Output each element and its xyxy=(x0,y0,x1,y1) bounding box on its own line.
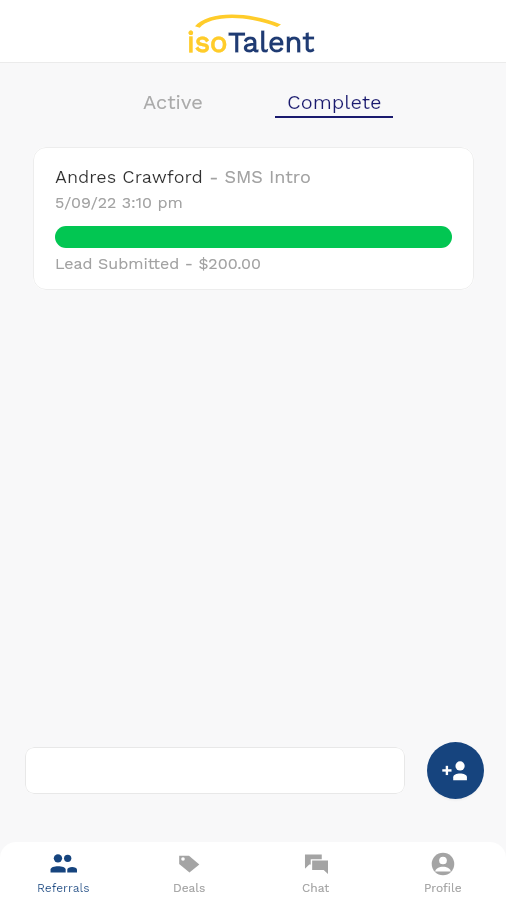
button[interactable]: Add referral xyxy=(427,742,484,799)
staticText: iso xyxy=(187,25,228,59)
staticText: Deals xyxy=(173,881,206,895)
button[interactable]: Referrals xyxy=(0,842,126,900)
button[interactable]: Complete xyxy=(275,79,393,124)
staticText: Chat xyxy=(302,881,330,895)
button[interactable]: Deals xyxy=(126,842,252,900)
staticText: Lead Submitted - $200.00 xyxy=(55,254,261,273)
button[interactable]: Profile xyxy=(379,842,506,900)
staticText: Active xyxy=(143,90,203,113)
staticText: Andres Crawford xyxy=(55,166,203,187)
staticText: Talent xyxy=(228,25,315,59)
button[interactable]: Active xyxy=(133,79,213,124)
button[interactable]: Andres Crawford xyxy=(33,147,474,290)
staticText: Profile xyxy=(424,881,462,895)
staticText: Referrals xyxy=(37,881,90,895)
staticText: Complete xyxy=(287,90,382,113)
staticText: - SMS Intro xyxy=(203,166,311,187)
button[interactable]: Chat xyxy=(252,842,379,900)
staticText: 5/09/22 3:10 pm xyxy=(55,193,183,212)
button[interactable] xyxy=(25,747,405,794)
